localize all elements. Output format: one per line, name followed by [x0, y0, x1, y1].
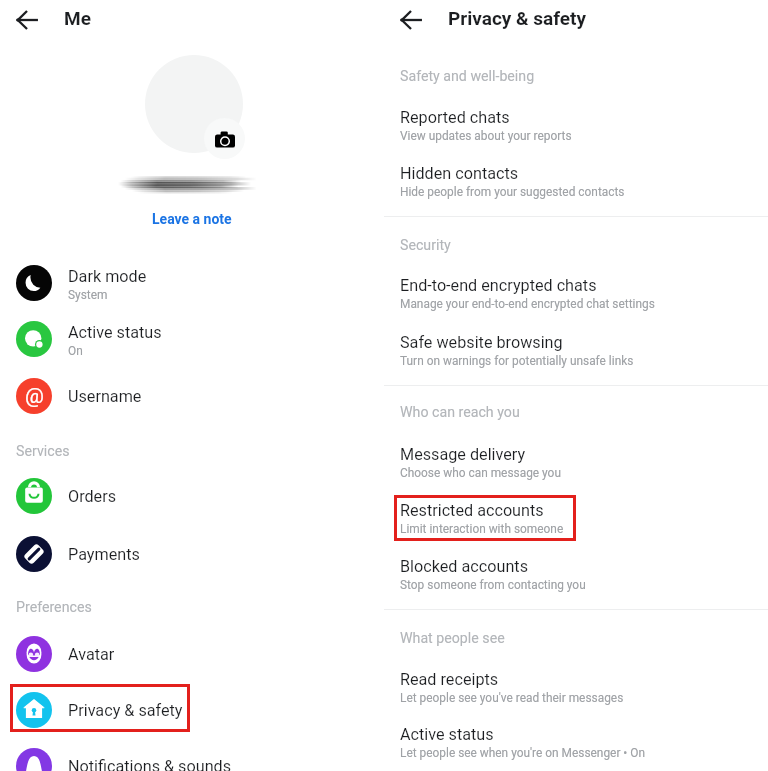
button[interactable] [10, 684, 190, 732]
button[interactable] [10, 313, 190, 361]
staticText: Who can reach you [400, 404, 520, 421]
staticText: Active status [68, 323, 162, 342]
button[interactable] [10, 740, 190, 771]
staticText: Payments [68, 545, 140, 564]
staticText: Preferences [16, 599, 92, 616]
staticText: Security [400, 237, 451, 254]
staticText: Restricted accounts [400, 501, 544, 520]
staticText: Let people see when you're on Messenger … [400, 746, 646, 760]
staticText: Manage your end-to-end encrypted chat se… [400, 297, 655, 311]
staticText: Read receipts [400, 670, 499, 689]
staticText: Hide people from your suggested contacts [400, 185, 625, 199]
button[interactable] [394, 719, 576, 765]
button[interactable] [10, 257, 190, 305]
staticText: Safety and well-being [400, 68, 535, 85]
staticText: Privacy & safety [448, 7, 587, 29]
button[interactable]: Leave a note [152, 211, 232, 227]
button[interactable] [394, 664, 576, 710]
staticText: On [68, 344, 83, 358]
staticText: Privacy & safety [68, 701, 183, 720]
staticText: Stop someone from contacting you [400, 578, 586, 592]
button[interactable] [10, 628, 190, 676]
staticText: Turn on warnings for potentially unsafe … [400, 354, 634, 368]
button[interactable] [394, 439, 576, 485]
staticText: System [68, 288, 108, 302]
staticText: Safe website browsing [400, 333, 563, 352]
button[interactable] [10, 370, 190, 418]
staticText: Leave a note [152, 211, 232, 227]
staticText: Message delivery [400, 445, 526, 464]
button[interactable]: Change profile photo [204, 118, 245, 159]
staticText: Avatar [68, 645, 115, 664]
staticText: Notifications & sounds [68, 757, 232, 771]
button[interactable] [394, 158, 576, 204]
staticText: Services [16, 443, 70, 460]
button[interactable]: Back [393, 2, 429, 38]
staticText: Reported chats [400, 108, 510, 127]
staticText: Active status [400, 725, 494, 744]
button[interactable]: Back [9, 2, 45, 38]
staticText: Hidden contacts [400, 164, 519, 183]
staticText: Choose who can message you [400, 466, 561, 480]
staticText: Me [64, 7, 91, 29]
staticText: What people see [400, 630, 505, 647]
button[interactable] [394, 551, 576, 597]
button[interactable] [394, 495, 576, 541]
staticText: View updates about your reports [400, 129, 572, 143]
button[interactable] [10, 470, 190, 518]
staticText: Blocked accounts [400, 557, 528, 576]
button[interactable] [394, 270, 576, 316]
button[interactable] [394, 102, 576, 148]
button[interactable] [394, 327, 576, 373]
staticText: End-to-end encrypted chats [400, 276, 597, 295]
staticText: @ [25, 384, 44, 409]
staticText: Let people see you've read their message… [400, 691, 624, 705]
staticText: Limit interaction with someone [400, 522, 564, 536]
staticText: Username [68, 387, 142, 406]
staticText: Orders [68, 487, 117, 506]
button[interactable] [10, 528, 190, 576]
button[interactable]: Profile photo [145, 55, 243, 153]
staticText: Dark mode [68, 267, 147, 286]
